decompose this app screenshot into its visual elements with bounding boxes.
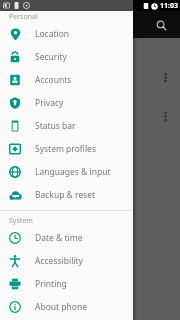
button[interactable]: Status bar <box>0 114 133 137</box>
button[interactable]: Date & time <box>0 226 133 249</box>
staticText: System profiles <box>35 143 96 155</box>
staticText: Privacy <box>35 97 64 109</box>
staticText: Location <box>35 28 70 40</box>
staticText: About phone <box>35 301 88 313</box>
button[interactable]: Accessibility <box>0 249 133 272</box>
staticText: Printing <box>35 278 67 290</box>
button[interactable]: Privacy <box>0 91 133 114</box>
button[interactable]: Languages & input <box>0 160 133 183</box>
button[interactable]: Security <box>0 45 133 68</box>
button[interactable]: System profiles <box>0 137 133 160</box>
staticText: Backup & reset <box>35 189 96 201</box>
staticText: System <box>9 216 33 226</box>
button[interactable]: Printing <box>0 272 133 295</box>
button[interactable]: About phone <box>0 295 133 318</box>
button[interactable]: More options <box>157 108 173 124</box>
staticText: Personal <box>9 12 38 22</box>
button[interactable]: More options <box>157 69 173 85</box>
button[interactable]: Location <box>0 22 133 45</box>
staticText: Status bar <box>35 120 76 132</box>
button[interactable]: Search <box>150 14 172 36</box>
button[interactable]: Accounts <box>0 68 133 91</box>
staticText: 11:03 <box>160 1 178 11</box>
staticText: Date & time <box>35 232 83 244</box>
staticText: Accessibility <box>35 255 83 267</box>
staticText: Accounts <box>35 74 72 86</box>
button[interactable]: Backup & reset <box>0 183 133 206</box>
staticText: Languages & input <box>35 166 111 178</box>
staticText: Security <box>35 51 67 63</box>
